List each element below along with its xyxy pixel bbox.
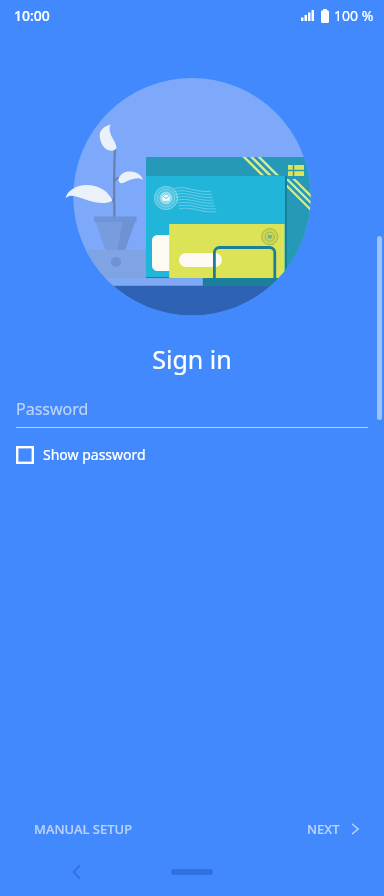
staticText: MANUAL SETUP [34,820,133,838]
staticText: Show password [43,445,146,464]
staticText: 10:00 [14,6,50,25]
staticText: NEXT [307,820,340,838]
staticText: 100 % [334,6,374,25]
button[interactable]: NEXT [299,812,370,846]
staticText: Password [16,398,89,420]
button[interactable]: MANUAL SETUP [26,812,141,846]
button[interactable]: Back [66,861,88,883]
button[interactable]: Home [171,869,213,875]
staticText: Sign in [0,342,384,376]
button[interactable]: Show password [16,445,146,464]
